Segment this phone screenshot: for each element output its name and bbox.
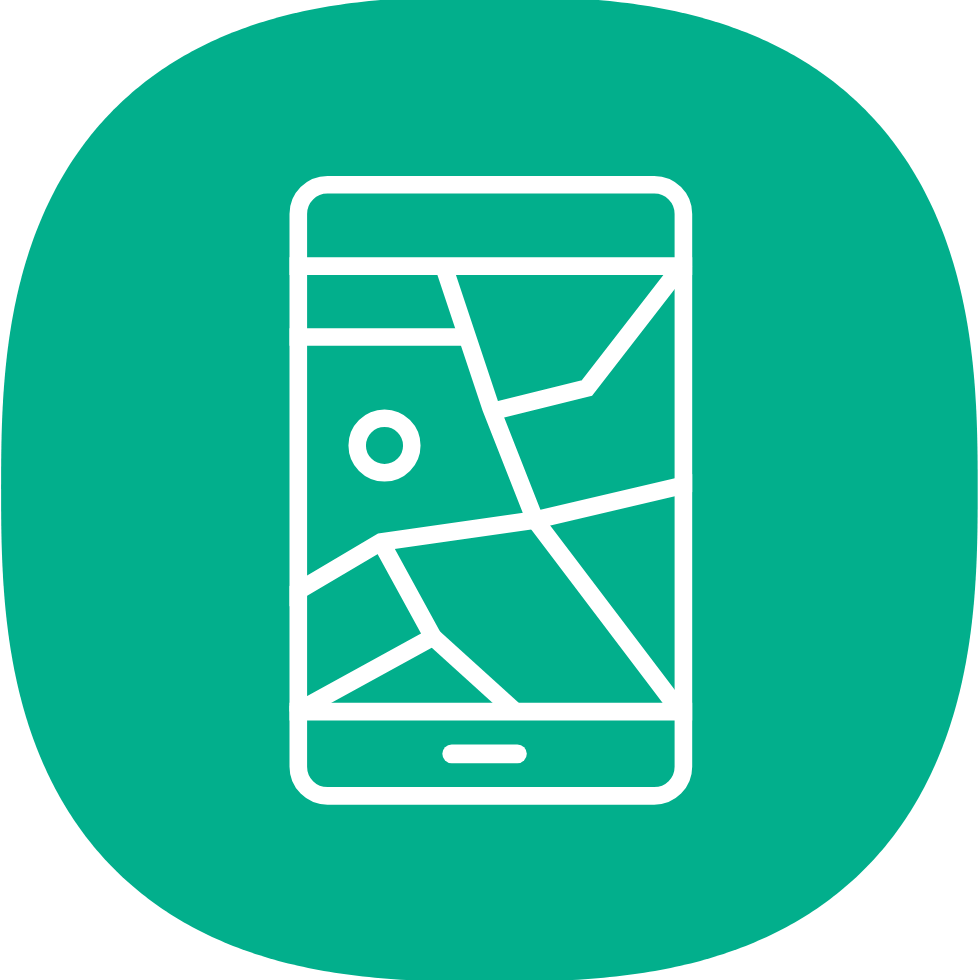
button[interactable]: Mobile map app icon xyxy=(0,0,980,980)
